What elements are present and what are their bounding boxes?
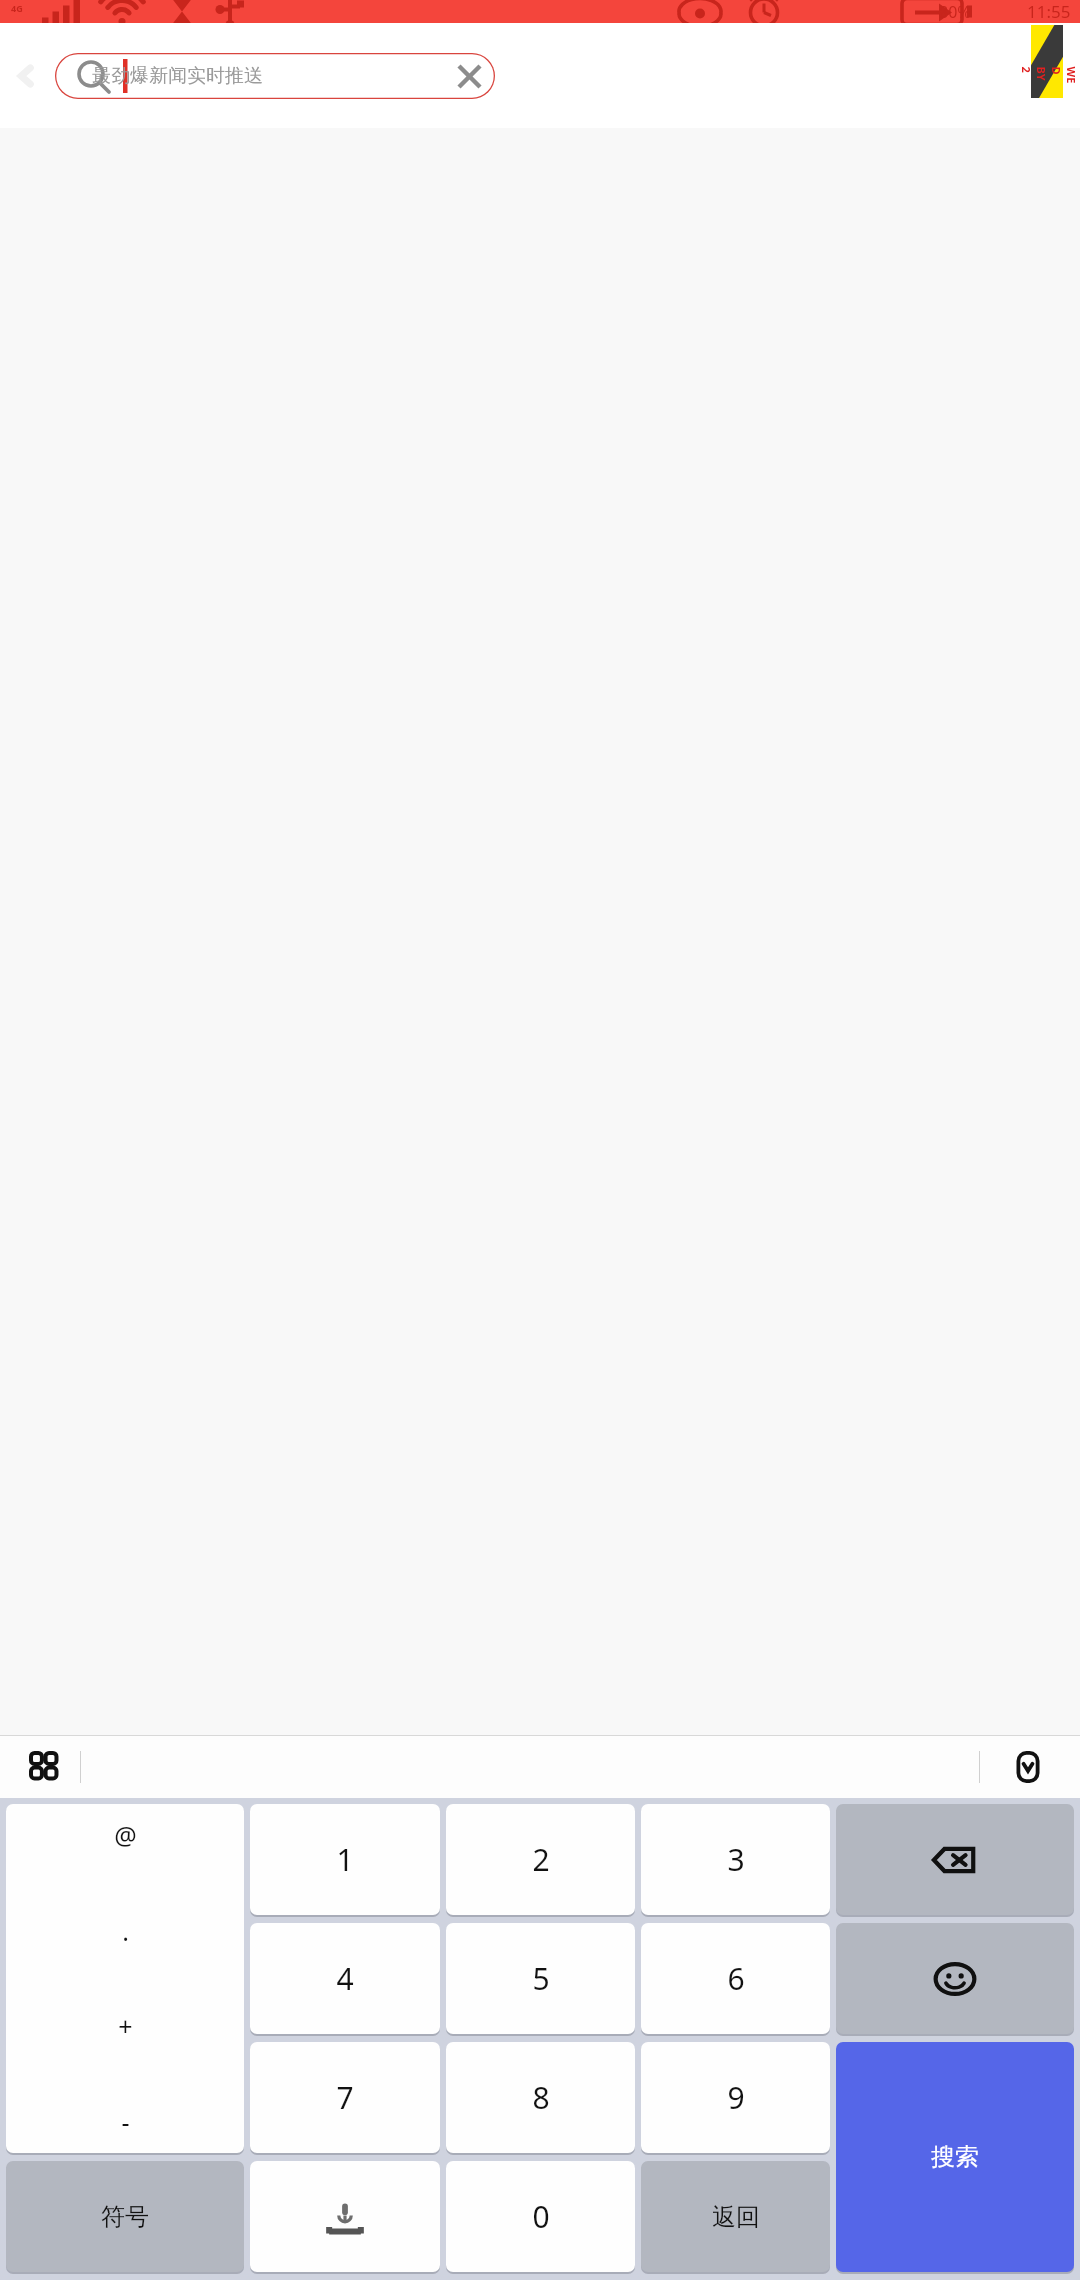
button[interactable]: 符号 bbox=[6, 2161, 244, 2272]
button[interactable]: 4 bbox=[250, 1923, 440, 2034]
staticText: 7 bbox=[336, 2077, 354, 2118]
staticText: 返回 bbox=[712, 2202, 760, 2232]
button[interactable]: 9 bbox=[641, 2042, 830, 2153]
button[interactable]: Voice input bbox=[250, 2161, 440, 2272]
staticText: 11:55 bbox=[1027, 0, 1071, 23]
staticText: 4 bbox=[336, 1958, 354, 1999]
staticText: 最劲爆新闻实时推送 bbox=[92, 64, 263, 88]
staticText: . bbox=[122, 1914, 129, 1948]
button[interactable]: 1 bbox=[250, 1804, 440, 1915]
button[interactable]: 3 bbox=[641, 1804, 830, 1915]
button[interactable]: 8 bbox=[446, 2042, 635, 2153]
button[interactable]: 最劲爆新闻实时推送 bbox=[55, 53, 495, 99]
staticText: 8 bbox=[532, 2077, 550, 2118]
button[interactable]: 2 bbox=[446, 1804, 635, 1915]
button[interactable]: 返回 bbox=[641, 2161, 830, 2272]
staticText: 6 bbox=[727, 1958, 745, 1999]
staticText: 搜索 bbox=[931, 2142, 979, 2172]
button[interactable]: Hide keyboard bbox=[1003, 1742, 1053, 1792]
button[interactable]: Keyboard layouts bbox=[20, 1742, 70, 1792]
staticText: - bbox=[121, 2105, 130, 2139]
staticText: @ bbox=[114, 1818, 137, 1852]
button[interactable]: @ bbox=[6, 1804, 244, 2153]
button[interactable]: Delete bbox=[836, 1804, 1074, 1915]
button[interactable]: Clear text bbox=[443, 53, 495, 99]
staticText: 9 bbox=[727, 2077, 745, 2118]
staticText: + bbox=[118, 2009, 133, 2043]
staticText: 2 bbox=[532, 1839, 550, 1880]
button[interactable]: 0 bbox=[446, 2161, 635, 2272]
staticText: 1 bbox=[336, 1839, 354, 1880]
button[interactable]: 7 bbox=[250, 2042, 440, 2153]
staticText: 符号 bbox=[101, 2202, 149, 2232]
staticText: ERFLOWED BY 2 bbox=[1018, 66, 1080, 84]
button[interactable]: 6 bbox=[641, 1923, 830, 2034]
staticText: 4G bbox=[11, 2, 23, 14]
staticText: 80% bbox=[939, 1, 971, 23]
button[interactable]: 搜索 bbox=[836, 2042, 1074, 2272]
staticText: 0 bbox=[532, 2196, 550, 2237]
staticText: 3 bbox=[727, 1839, 745, 1880]
button[interactable]: Emoji bbox=[836, 1923, 1074, 2034]
staticText: 5 bbox=[532, 1958, 550, 1999]
button[interactable]: 5 bbox=[446, 1923, 635, 2034]
